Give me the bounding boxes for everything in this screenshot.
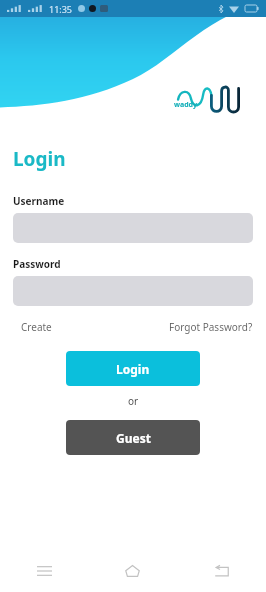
staticText: 11:35 <box>49 3 73 15</box>
staticText: waddy <box>174 100 198 110</box>
staticText: Username <box>13 194 65 208</box>
button[interactable]: Home <box>88 550 177 592</box>
staticText: or <box>128 394 139 408</box>
staticText: Create <box>21 320 52 334</box>
staticText: Login <box>13 146 66 172</box>
button[interactable]: Guest <box>66 420 200 455</box>
staticText: Password <box>13 257 61 271</box>
button[interactable]: Login <box>66 351 200 386</box>
button[interactable]: Recent apps <box>0 550 88 592</box>
button[interactable]: Forgot Password? <box>169 317 253 337</box>
button[interactable]: Back <box>177 550 266 592</box>
staticText: Login <box>116 361 150 377</box>
button[interactable]: Create <box>13 317 60 337</box>
staticText: Guest <box>116 430 151 446</box>
staticText: Forgot Password? <box>169 320 253 334</box>
